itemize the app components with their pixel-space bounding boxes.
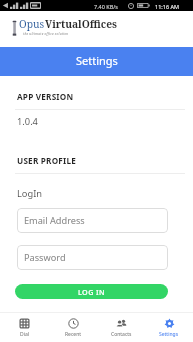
button[interactable]: LOG IN	[15, 284, 168, 299]
staticText: VirtualOffices	[45, 17, 117, 31]
staticText: Password	[24, 251, 66, 264]
staticText: LogIn	[17, 187, 43, 200]
staticText: Settings	[159, 331, 179, 338]
button[interactable]: Settings	[0, 47, 193, 76]
staticText: Contacts	[111, 331, 132, 338]
button[interactable]: Recent	[49, 313, 97, 342]
staticText: USER PROFILE	[17, 155, 76, 166]
button[interactable]: Dial	[0, 313, 49, 342]
button[interactable]: Password	[17, 245, 168, 270]
button[interactable]: Email Address	[17, 208, 168, 233]
staticText: the ultimate office solution	[23, 32, 69, 36]
staticText: LOG IN	[78, 287, 105, 297]
staticText: 11:16 AM	[155, 3, 179, 10]
staticText: APP VERSION	[17, 91, 74, 102]
staticText: Opus	[19, 17, 45, 31]
staticText: 7.40 KB/s	[94, 3, 119, 10]
staticText: Email Address	[24, 214, 85, 227]
staticText: Settings	[76, 53, 118, 68]
button[interactable]: Contacts	[97, 313, 145, 342]
staticText: Dial	[20, 331, 30, 338]
button[interactable]: Settings	[145, 313, 193, 342]
staticText: 1.0.4	[17, 115, 38, 128]
staticText: Recent	[65, 331, 82, 338]
